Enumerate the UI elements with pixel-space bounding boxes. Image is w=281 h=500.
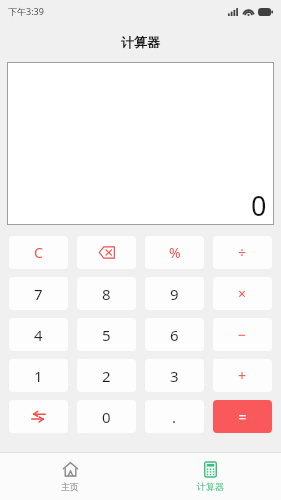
button[interactable]: .	[145, 400, 204, 433]
button[interactable]: 4	[9, 318, 68, 351]
staticText: 5	[102, 325, 111, 345]
staticText: %	[169, 243, 181, 262]
staticText: 4	[34, 325, 43, 345]
button[interactable]: +	[213, 359, 272, 392]
staticText: 主页	[61, 481, 79, 492]
button[interactable]: 9	[145, 277, 204, 310]
button[interactable]: 8	[77, 277, 136, 310]
staticText: 2	[102, 366, 111, 386]
staticText: ÷	[238, 243, 247, 262]
button[interactable]: ÷	[213, 236, 272, 269]
button[interactable]: 0	[77, 400, 136, 433]
staticText: ×	[238, 284, 247, 303]
staticText: =	[238, 407, 247, 426]
staticText: 6	[170, 325, 179, 345]
staticText: 0	[102, 407, 111, 427]
staticText: .	[172, 407, 177, 427]
staticText: 9	[170, 284, 179, 304]
button[interactable]: −	[213, 318, 272, 351]
button[interactable]: =	[213, 400, 272, 433]
staticText: 计算器	[121, 34, 160, 50]
button[interactable]: 7	[9, 277, 68, 310]
button[interactable]: 3	[145, 359, 204, 392]
button[interactable]: Delete	[77, 236, 136, 269]
button[interactable]: ×	[213, 277, 272, 310]
staticText: 3	[170, 366, 179, 386]
staticText: −	[238, 325, 247, 344]
staticText: +	[238, 366, 247, 385]
button[interactable]: C	[9, 236, 68, 269]
staticText: 1	[34, 366, 43, 386]
staticText: 7	[34, 284, 43, 304]
staticText: 计算器	[197, 481, 224, 492]
button[interactable]: %	[145, 236, 204, 269]
button[interactable]: 5	[77, 318, 136, 351]
button[interactable]: 6	[145, 318, 204, 351]
staticText: 下午3:39	[8, 5, 44, 17]
button[interactable]: 计算器	[140, 453, 281, 500]
button[interactable]: Swap	[9, 400, 68, 433]
staticText: 0	[251, 187, 267, 224]
button[interactable]: 2	[77, 359, 136, 392]
staticText: C	[34, 243, 43, 262]
staticText: 8	[102, 284, 111, 304]
button[interactable]: 主页	[0, 453, 140, 500]
button[interactable]: 1	[9, 359, 68, 392]
